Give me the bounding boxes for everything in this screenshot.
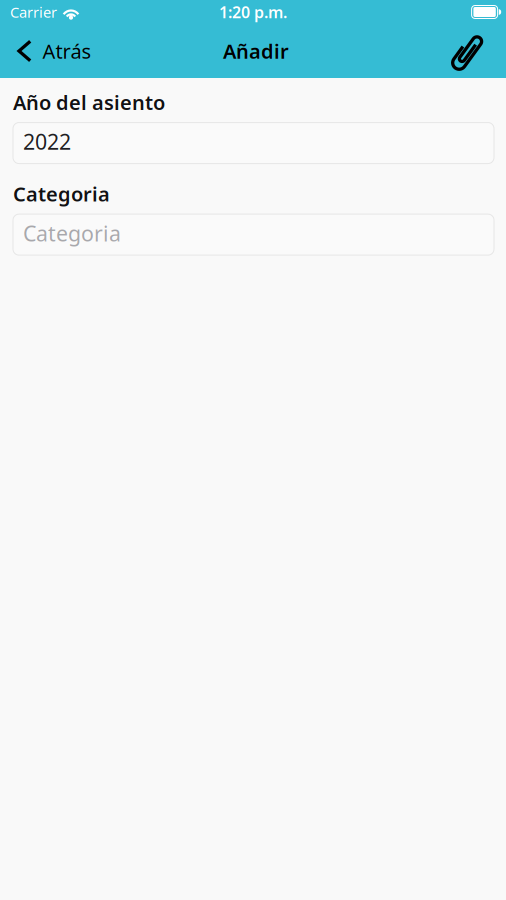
staticText: Categoria xyxy=(13,181,110,207)
staticText: Categoria xyxy=(23,219,121,247)
staticText: 2022 xyxy=(23,127,71,156)
staticText: Añadir xyxy=(223,38,289,64)
button[interactable]: Categoria xyxy=(13,214,494,255)
staticText: Atrás xyxy=(42,38,91,64)
staticText: Carrier xyxy=(10,2,57,22)
staticText: 1:20 p.m. xyxy=(219,1,287,23)
button[interactable]: Atrás xyxy=(0,24,105,78)
button[interactable]: Adjuntar archivo xyxy=(434,24,506,78)
button[interactable]: 2022 xyxy=(13,123,494,164)
staticText: Año del asiento xyxy=(13,89,165,116)
